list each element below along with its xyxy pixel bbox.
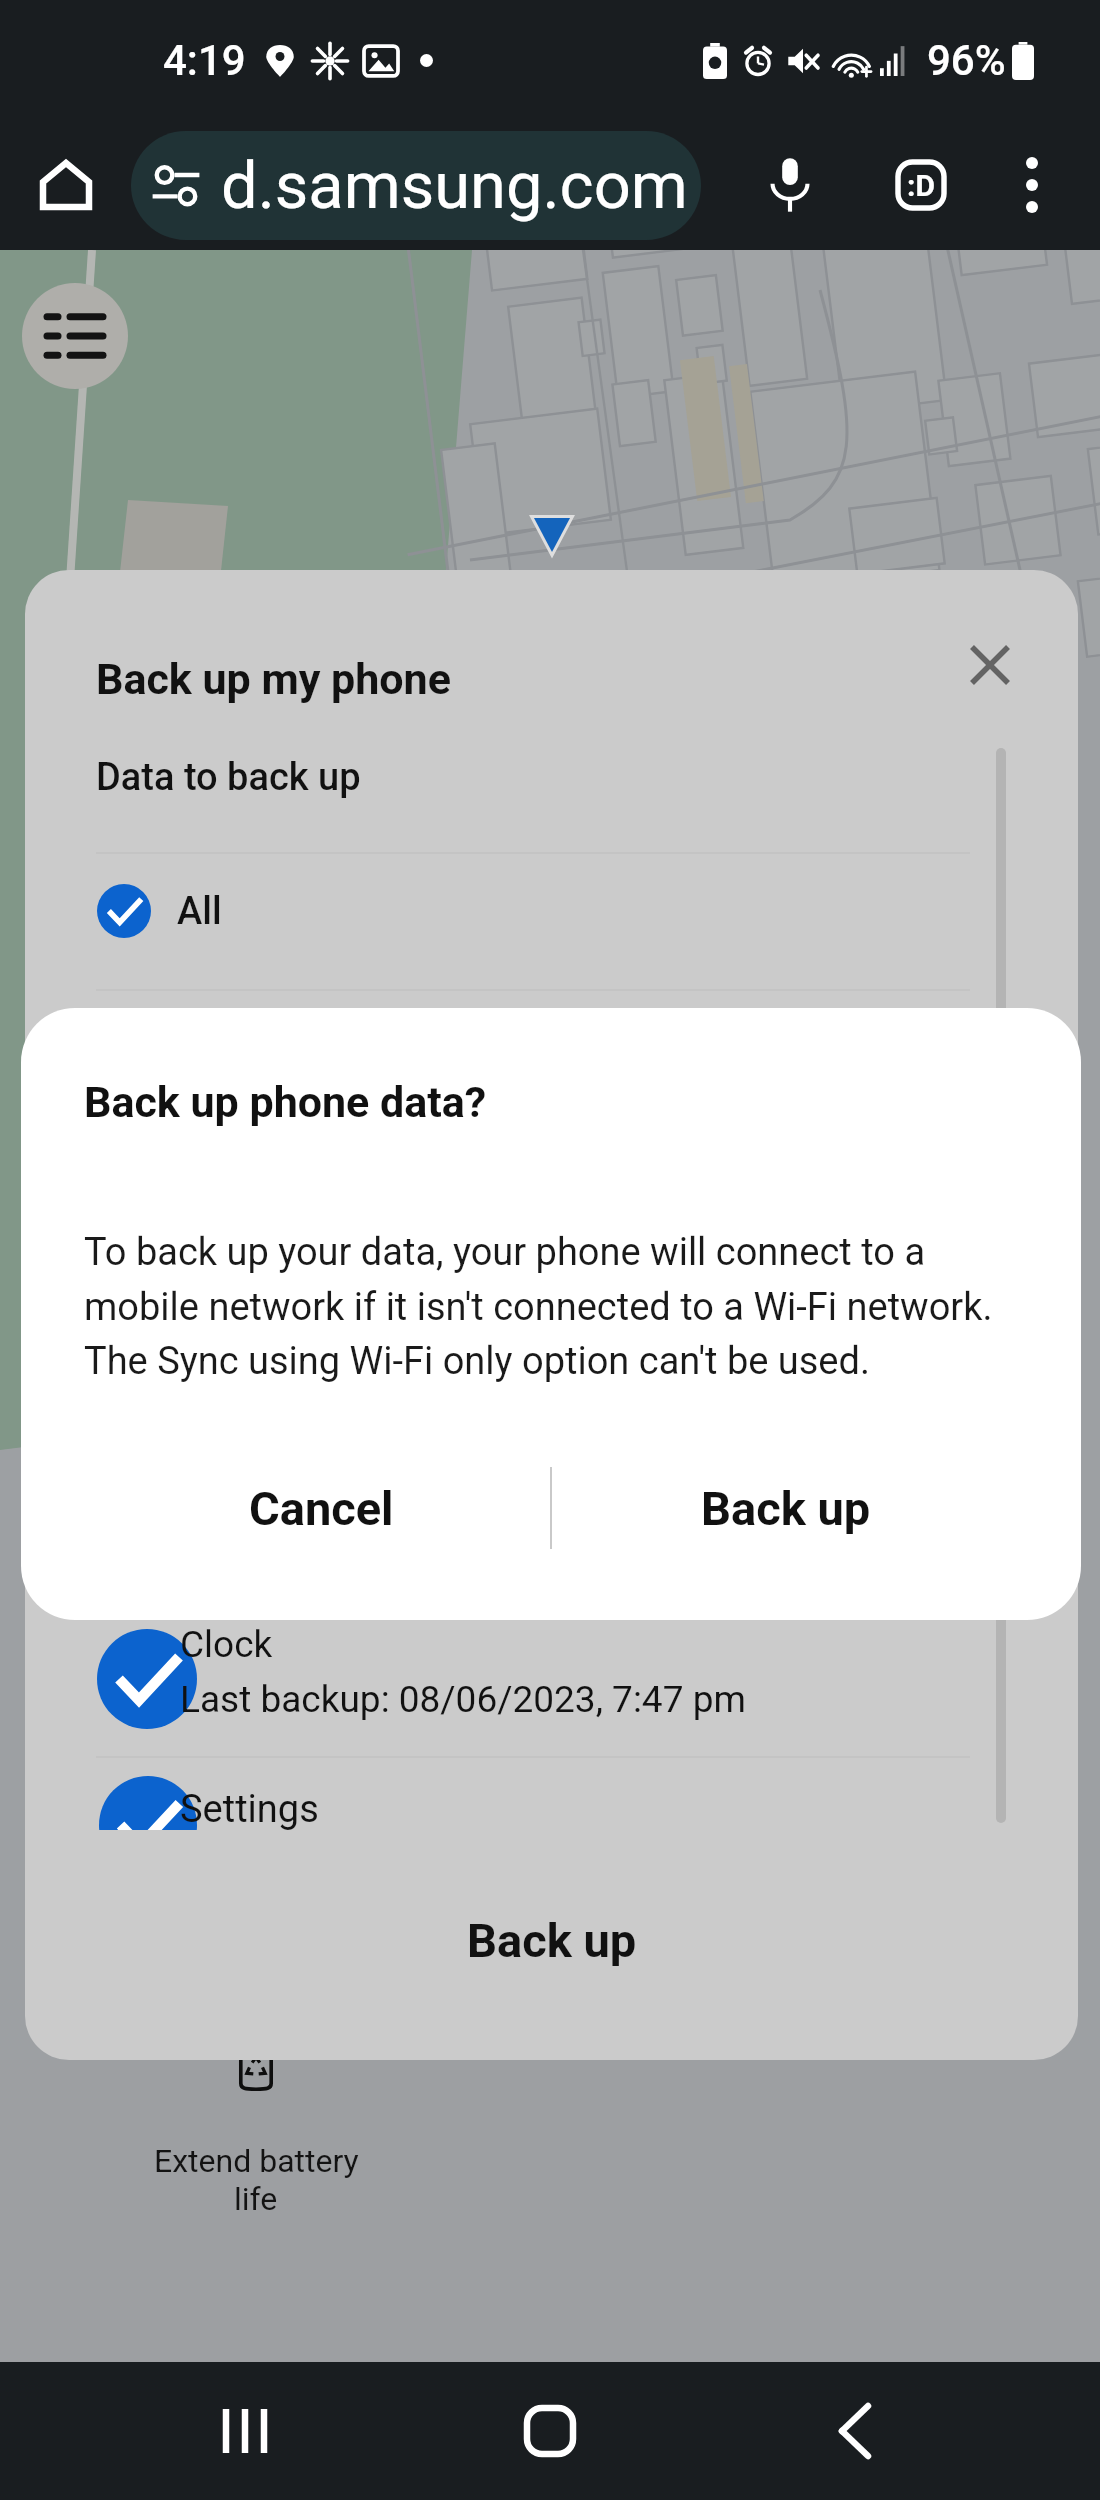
button[interactable]: Back up <box>25 1880 1078 2000</box>
staticText: :D <box>907 168 935 203</box>
button[interactable]: All <box>25 854 1078 968</box>
button[interactable]: Home <box>490 2371 610 2491</box>
staticText: Last backup: 08/06/2023, 7:47 pm <box>180 1678 746 1721</box>
staticText: Data to back up <box>96 755 361 800</box>
button[interactable]: Back up <box>551 1448 1021 1568</box>
button[interactable]: List view <box>22 283 128 389</box>
staticText: d.samsung.com <box>221 148 688 224</box>
button[interactable]: Close <box>950 625 1030 705</box>
staticText: Back up phone data? <box>84 1077 487 1127</box>
staticText: Back up <box>701 1481 871 1536</box>
staticText: life <box>234 2180 278 2218</box>
button[interactable]: Emoji <box>879 143 963 227</box>
staticText: All <box>177 889 222 934</box>
button[interactable]: Cancel <box>91 1448 551 1568</box>
button[interactable]: Voice search <box>748 143 832 227</box>
staticText: 96% <box>927 36 1006 85</box>
staticText: Extend battery <box>154 2142 359 2180</box>
staticText: Back up <box>467 1913 637 1968</box>
staticText: Settings <box>180 1787 319 1830</box>
staticText: 4:19 <box>163 36 246 85</box>
button[interactable]: Settings <box>25 1766 1078 1830</box>
button[interactable]: Recent apps <box>185 2371 305 2491</box>
button[interactable]: More options <box>993 146 1071 224</box>
staticText: Clock <box>180 1623 273 1666</box>
button[interactable]: Home <box>26 145 106 225</box>
button[interactable]: d.samsung.com <box>131 131 701 240</box>
button[interactable]: Clock <box>25 1607 1078 1755</box>
staticText: To back up your data, your phone will co… <box>84 1230 993 1383</box>
button[interactable]: Back <box>795 2371 915 2491</box>
staticText: Cancel <box>249 1481 394 1536</box>
staticText: Back up my phone <box>96 654 451 704</box>
